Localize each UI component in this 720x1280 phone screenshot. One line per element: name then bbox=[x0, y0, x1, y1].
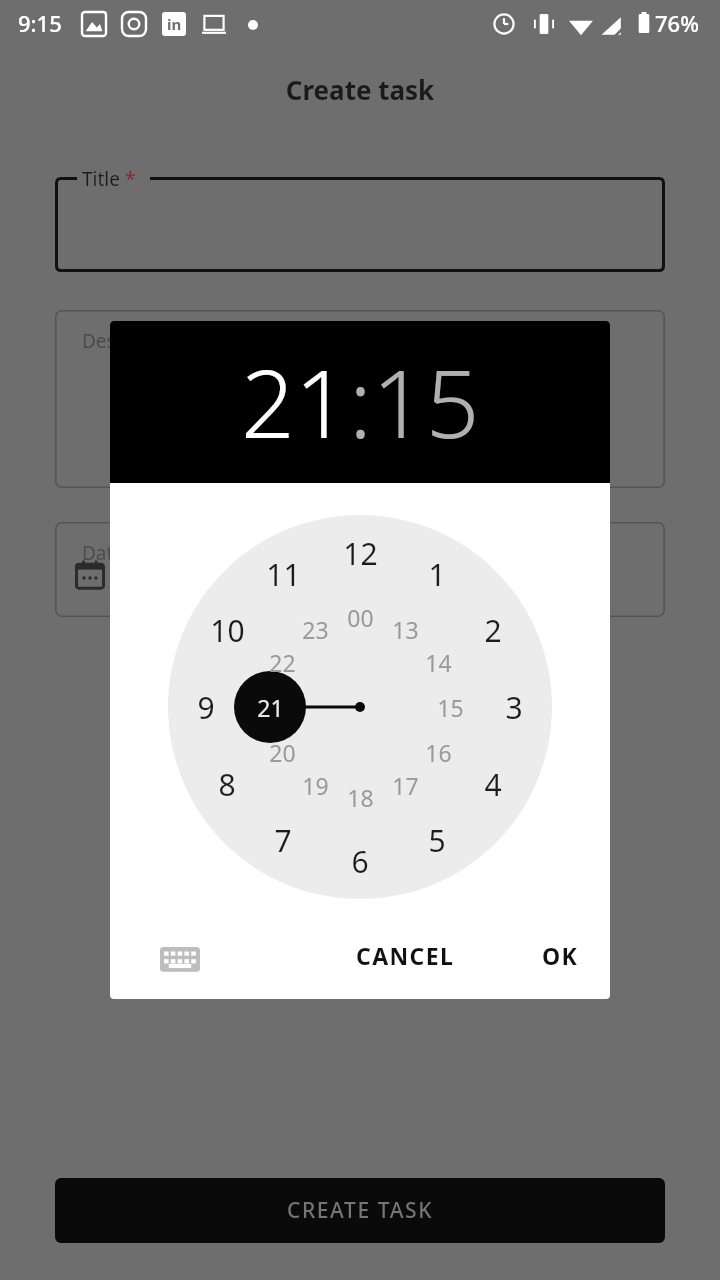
staticText: 2 bbox=[484, 610, 502, 651]
button[interactable]: OK bbox=[528, 928, 593, 983]
button[interactable]: 10 bbox=[192, 607, 262, 653]
staticText: Date bbox=[82, 540, 125, 566]
staticText: OK bbox=[542, 940, 579, 971]
button[interactable]: Switch to text input bbox=[152, 927, 208, 983]
button[interactable]: 20 bbox=[247, 729, 317, 775]
button[interactable]: 19 bbox=[280, 762, 350, 808]
button[interactable]: 17 bbox=[370, 762, 440, 808]
staticText: Title bbox=[82, 166, 120, 192]
staticText: in bbox=[167, 14, 182, 34]
button[interactable]: 15 bbox=[415, 684, 485, 730]
staticText: 16 bbox=[425, 737, 452, 768]
staticText: Create task bbox=[0, 72, 720, 107]
button[interactable]: CANCEL bbox=[342, 928, 469, 983]
button[interactable]: 15 bbox=[372, 338, 480, 466]
staticText: 15 bbox=[437, 692, 464, 723]
staticText: 9 bbox=[197, 687, 215, 728]
staticText: 7 bbox=[274, 820, 292, 861]
button[interactable]: Title bbox=[55, 177, 665, 272]
staticText: 3 bbox=[505, 687, 523, 728]
staticText: 18 bbox=[347, 782, 374, 813]
button[interactable]: 00 bbox=[325, 594, 395, 640]
staticText: 1 bbox=[428, 554, 446, 595]
staticText: 6 bbox=[351, 841, 369, 882]
staticText: 9:15 bbox=[18, 8, 62, 38]
staticText: 13 bbox=[392, 614, 419, 645]
button[interactable]: 23 bbox=[280, 606, 350, 652]
button[interactable]: 13 bbox=[370, 606, 440, 652]
button[interactable]: 21 bbox=[235, 684, 305, 730]
button[interactable]: 8 bbox=[192, 761, 262, 807]
button[interactable]: 6 bbox=[325, 838, 395, 884]
button[interactable]: 18 bbox=[325, 774, 395, 820]
button[interactable]: 9 bbox=[171, 684, 241, 730]
staticText: 11 bbox=[266, 554, 301, 595]
button[interactable]: 14 bbox=[403, 639, 473, 685]
button[interactable]: 1 bbox=[402, 551, 472, 597]
button[interactable]: Description bbox=[55, 310, 665, 488]
staticText: 22 bbox=[269, 647, 296, 678]
button[interactable]: 2 bbox=[458, 607, 528, 653]
staticText: 19 bbox=[302, 770, 329, 801]
staticText: 20 bbox=[269, 737, 296, 768]
staticText: 12 bbox=[343, 533, 378, 574]
staticText: 76% bbox=[655, 8, 699, 38]
staticText: 21 bbox=[257, 692, 284, 723]
button[interactable]: 7 bbox=[248, 817, 318, 863]
staticText: CANCEL bbox=[356, 940, 455, 971]
staticText: 8 bbox=[218, 764, 236, 805]
button[interactable]: 12 bbox=[325, 530, 395, 576]
staticText: Description bbox=[82, 328, 185, 354]
button[interactable]: CREATE TASK bbox=[55, 1178, 665, 1243]
button[interactable]: 4 bbox=[458, 761, 528, 807]
button[interactable]: 21 bbox=[241, 338, 349, 466]
button[interactable]: 5 bbox=[402, 817, 472, 863]
staticText: * bbox=[125, 166, 136, 192]
button[interactable]: 16 bbox=[403, 729, 473, 775]
staticText: 4 bbox=[484, 764, 502, 805]
staticText: 14 bbox=[425, 647, 452, 678]
staticText: 10 bbox=[210, 610, 245, 651]
staticText: 17 bbox=[392, 770, 419, 801]
staticText: 23 bbox=[302, 614, 329, 645]
button[interactable]: 22 bbox=[247, 639, 317, 685]
button[interactable]: 11 bbox=[248, 551, 318, 597]
staticText: 5 bbox=[428, 820, 446, 861]
staticText: CREATE TASK bbox=[287, 1196, 434, 1225]
staticText: 00 bbox=[347, 602, 374, 633]
staticText: : bbox=[349, 338, 372, 466]
button[interactable]: Date bbox=[55, 522, 665, 617]
button[interactable]: 3 bbox=[479, 684, 549, 730]
